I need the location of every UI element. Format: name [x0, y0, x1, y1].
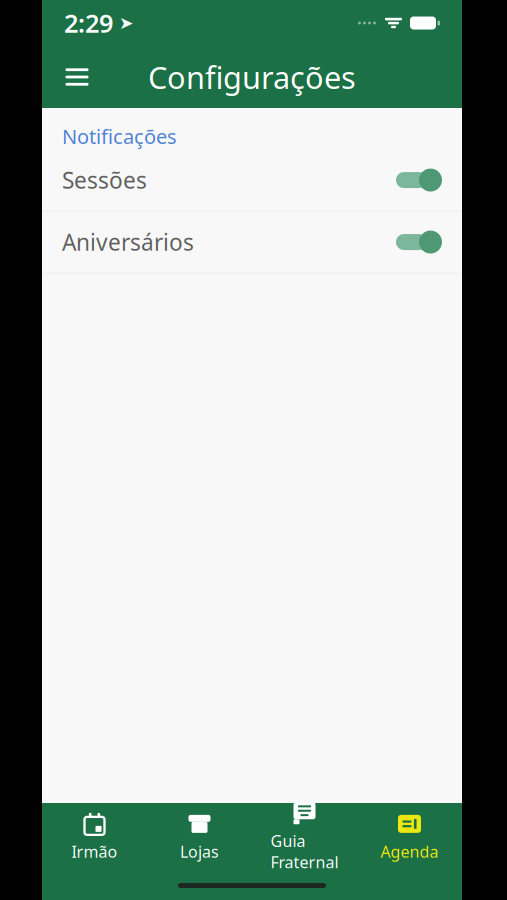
button[interactable]: Agenda [357, 813, 462, 861]
staticText: Sessões [62, 165, 147, 195]
staticText: Configurações [148, 57, 356, 97]
staticText: Notificações [62, 123, 177, 150]
staticText: ➤ [119, 13, 134, 33]
staticText: Lojas [180, 841, 219, 862]
button[interactable]: Guia Fraternal [252, 813, 357, 861]
staticText: 2:29 [64, 6, 113, 40]
staticText: Irmão [71, 841, 117, 862]
staticText: Agenda [380, 841, 438, 862]
button[interactable]: Sessões [42, 150, 462, 211]
button[interactable]: Irmão [42, 813, 147, 861]
button[interactable]: Menu [50, 50, 104, 104]
staticText: Guia Fraternal [270, 830, 338, 873]
button[interactable]: Lojas [147, 813, 252, 861]
staticText: Aniversários [62, 227, 194, 257]
button[interactable]: Aniversários [42, 212, 462, 273]
